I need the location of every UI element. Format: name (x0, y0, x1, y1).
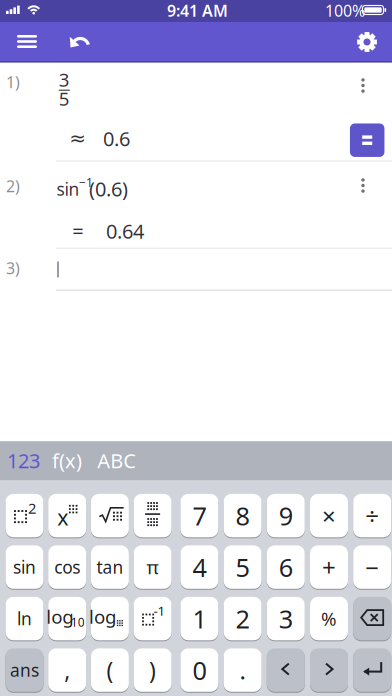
button[interactable]: 7 (180, 493, 218, 538)
button[interactable]: f(x) (45, 441, 89, 480)
staticText: π (147, 555, 159, 579)
staticText: 2 (28, 498, 36, 518)
button[interactable]: ans (5, 647, 43, 693)
button[interactable]: ln (5, 596, 43, 641)
button[interactable]: 3 (267, 596, 305, 641)
button[interactable]: ABC (93, 441, 141, 480)
button[interactable]: tan (91, 544, 129, 590)
staticText: . (240, 654, 246, 686)
staticText: × (322, 500, 336, 532)
button[interactable]: 2 (224, 596, 262, 641)
button[interactable] (310, 647, 348, 693)
staticText: 123 (7, 447, 40, 474)
staticText: (0.6) (89, 175, 128, 202)
staticText: ≈ (69, 127, 86, 150)
button[interactable] (134, 493, 172, 538)
staticText: 0.6 (103, 125, 130, 152)
button[interactable]: 9 (267, 493, 305, 538)
staticText: 4 (192, 550, 206, 584)
button[interactable]: ) (134, 647, 172, 693)
staticText: 9 (279, 499, 293, 532)
button[interactable]: 5 (224, 544, 262, 590)
staticText: 9:41 AM (167, 0, 228, 21)
button[interactable] (57, 19, 98, 63)
button[interactable] (353, 647, 391, 693)
button[interactable] (0, 161, 392, 248)
staticText: cos (54, 556, 80, 579)
staticText: ( (106, 655, 113, 685)
button[interactable] (0, 62, 392, 161)
staticText: = (72, 218, 83, 244)
button[interactable]: 2 (5, 493, 43, 538)
staticText: 2 (236, 602, 250, 635)
staticText: ) (149, 655, 156, 685)
staticText: 1) (6, 71, 20, 93)
button[interactable]: sin (5, 544, 43, 590)
staticText: 5 (59, 86, 70, 111)
button[interactable]: log (91, 596, 129, 641)
button[interactable] (349, 71, 377, 99)
button[interactable]: π (134, 544, 172, 590)
staticText: sin (56, 177, 79, 200)
staticText: 3 (59, 67, 70, 92)
button[interactable]: × (310, 493, 348, 538)
button[interactable]: , (48, 647, 86, 693)
staticText: 2) (6, 175, 20, 197)
staticText: 7 (192, 499, 206, 532)
button[interactable]: 4 (180, 544, 218, 590)
button[interactable]: + (310, 544, 348, 590)
staticText: , (64, 655, 70, 685)
button[interactable]: 0 (180, 647, 218, 693)
staticText: f(x) (52, 447, 82, 474)
button[interactable]: cos (48, 544, 86, 590)
button[interactable] (350, 123, 384, 157)
staticText: ÷ (365, 500, 379, 532)
staticText: log (46, 604, 73, 629)
staticText: ans (10, 659, 39, 682)
button[interactable]: 8 (224, 493, 262, 538)
staticText: log (89, 604, 116, 629)
button[interactable]: 1 (180, 596, 218, 641)
staticText: −1 (79, 174, 93, 190)
button[interactable]: % (310, 596, 348, 641)
staticText: 1 (192, 602, 206, 635)
staticText: sin (13, 556, 36, 579)
staticText: x (57, 503, 68, 531)
button[interactable]: − (353, 544, 391, 590)
button[interactable] (349, 171, 377, 199)
staticText: 10 (71, 614, 85, 630)
button[interactable] (0, 248, 392, 290)
button[interactable] (345, 22, 389, 62)
button[interactable]: log (48, 596, 86, 641)
staticText: 3) (6, 257, 20, 279)
button[interactable] (267, 647, 305, 693)
staticText: 3 (279, 602, 293, 635)
staticText: − (365, 551, 379, 583)
button[interactable]: -1 (134, 596, 172, 641)
button[interactable]: 6 (267, 544, 305, 590)
button[interactable] (353, 596, 391, 641)
button[interactable]: . (224, 647, 262, 693)
button[interactable]: ( (91, 647, 129, 693)
button[interactable]: x (48, 493, 86, 538)
staticText: ln (17, 607, 32, 630)
staticText: 0 (192, 653, 206, 687)
staticText: -1 (154, 602, 166, 619)
staticText: + (322, 551, 336, 583)
button[interactable] (7, 22, 47, 61)
staticText: % (321, 606, 337, 631)
staticText: 5 (236, 550, 250, 584)
staticText: 8 (236, 499, 250, 532)
button[interactable]: 123 (3, 441, 43, 480)
button[interactable]: ÷ (353, 493, 391, 538)
button[interactable] (91, 493, 129, 538)
staticText: 6 (279, 550, 293, 584)
staticText: 0.64 (106, 218, 144, 244)
staticText: tan (96, 556, 123, 579)
staticText: 100% (325, 0, 365, 21)
staticText: ABC (97, 447, 136, 474)
